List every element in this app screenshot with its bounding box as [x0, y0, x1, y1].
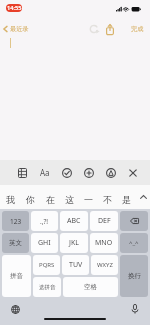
button[interactable]: .,?! [31, 211, 58, 231]
button[interactable]: 换行 [120, 255, 148, 297]
staticText: 不 [103, 194, 112, 205]
button[interactable]: 选拼音 [33, 277, 61, 297]
button[interactable]: More candidates [136, 185, 150, 209]
staticText: 拼音 [10, 272, 23, 280]
button[interactable]: 123 [2, 211, 29, 231]
button[interactable]: PQRS [33, 255, 60, 275]
button[interactable]: Table [15, 165, 30, 180]
button[interactable]: MNO [90, 233, 118, 253]
staticText: 123 [10, 217, 22, 226]
button[interactable]: 一 [79, 185, 98, 209]
button[interactable]: 最近录 [0, 19, 33, 38]
button[interactable]: ABC [60, 211, 88, 231]
staticText: 完成 [131, 25, 144, 33]
staticText: JKL [69, 238, 79, 248]
button[interactable]: 不 [98, 185, 117, 209]
button[interactable]: DEF [90, 211, 118, 231]
button[interactable]: Aa [37, 165, 52, 180]
button[interactable]: Dictation [127, 301, 143, 317]
staticText: 一 [84, 194, 93, 205]
button[interactable]: WXYZ [91, 255, 118, 275]
button[interactable]: 这 [60, 185, 79, 209]
staticText: Aa [40, 167, 50, 178]
button[interactable]: JKL [60, 233, 88, 253]
button[interactable]: Undo [87, 22, 101, 36]
button[interactable]: 空格 [63, 277, 118, 297]
button[interactable]: 我 [0, 185, 20, 209]
staticText: DEF [98, 216, 111, 226]
staticText: 空格 [84, 283, 97, 291]
button[interactable]: ^_^ [120, 233, 148, 253]
button[interactable]: Close keyboard [125, 165, 140, 180]
button[interactable]: TUV [62, 255, 89, 275]
button[interactable]: 英文 [2, 233, 29, 253]
staticText: 你 [26, 194, 35, 205]
staticText: GHI [38, 238, 51, 248]
button[interactable]: Change keyboard [7, 301, 23, 317]
staticText: MNO [95, 238, 113, 248]
staticText: TUV [69, 260, 83, 270]
staticText: 英文 [9, 239, 22, 247]
staticText: 这 [65, 194, 74, 205]
staticText: PQRS [39, 261, 55, 269]
staticText: ^_^ [129, 239, 139, 247]
button[interactable]: Add attachment [81, 165, 96, 180]
staticText: 选拼音 [39, 284, 56, 291]
staticText: .,?! [40, 217, 49, 226]
button[interactable]: 完成 [129, 19, 150, 38]
button[interactable]: Backspace [120, 211, 148, 231]
staticText: 在 [46, 194, 55, 205]
button[interactable]: 在 [40, 185, 60, 209]
button[interactable]: Share [102, 21, 118, 37]
staticText: 14:55 [7, 4, 22, 12]
button[interactable]: GHI [31, 233, 58, 253]
staticText: 我 [6, 194, 15, 205]
button[interactable]: Checklist [59, 165, 74, 180]
staticText: 是 [122, 194, 131, 205]
button[interactable]: 拼音 [2, 255, 31, 297]
button[interactable]: 你 [20, 185, 40, 209]
button[interactable]: Markup [103, 165, 118, 180]
staticText: 最近录 [10, 25, 29, 33]
staticText: WXYZ [97, 261, 113, 269]
staticText: ABC [67, 216, 81, 226]
button[interactable]: 是 [117, 185, 136, 209]
staticText: 换行 [128, 272, 141, 280]
